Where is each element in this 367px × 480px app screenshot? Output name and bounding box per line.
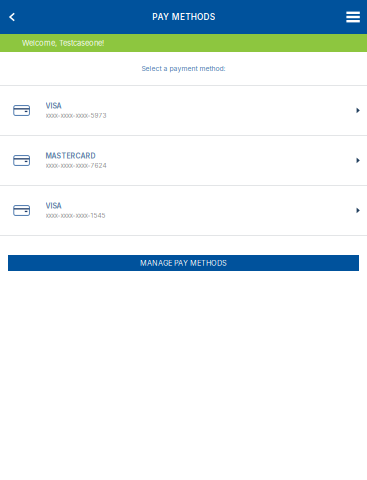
staticText: MASTERCARD	[46, 152, 96, 160]
staticText: PAY METHODS	[152, 12, 215, 22]
button[interactable]: MANAGE PAY METHODS	[8, 255, 359, 271]
staticText: xxxx-xxxx-xxxx-7624	[46, 162, 107, 169]
staticText: xxxx-xxxx-xxxx-5973	[46, 112, 107, 119]
button[interactable]: Menu	[334, 0, 367, 34]
staticText: VISA	[46, 202, 62, 210]
staticText: Welcome, Testcaseone!	[22, 38, 104, 48]
button[interactable]: MASTERCARD	[0, 136, 367, 185]
staticText: Select a payment method:	[141, 64, 225, 73]
staticText: MANAGE PAY METHODS	[140, 259, 227, 267]
staticText: xxxx-xxxx-xxxx-1545	[46, 212, 106, 219]
button[interactable]: VISA	[0, 186, 367, 235]
button[interactable]: Back	[0, 0, 27, 34]
button[interactable]: VISA	[0, 86, 367, 135]
staticText: VISA	[46, 102, 62, 110]
